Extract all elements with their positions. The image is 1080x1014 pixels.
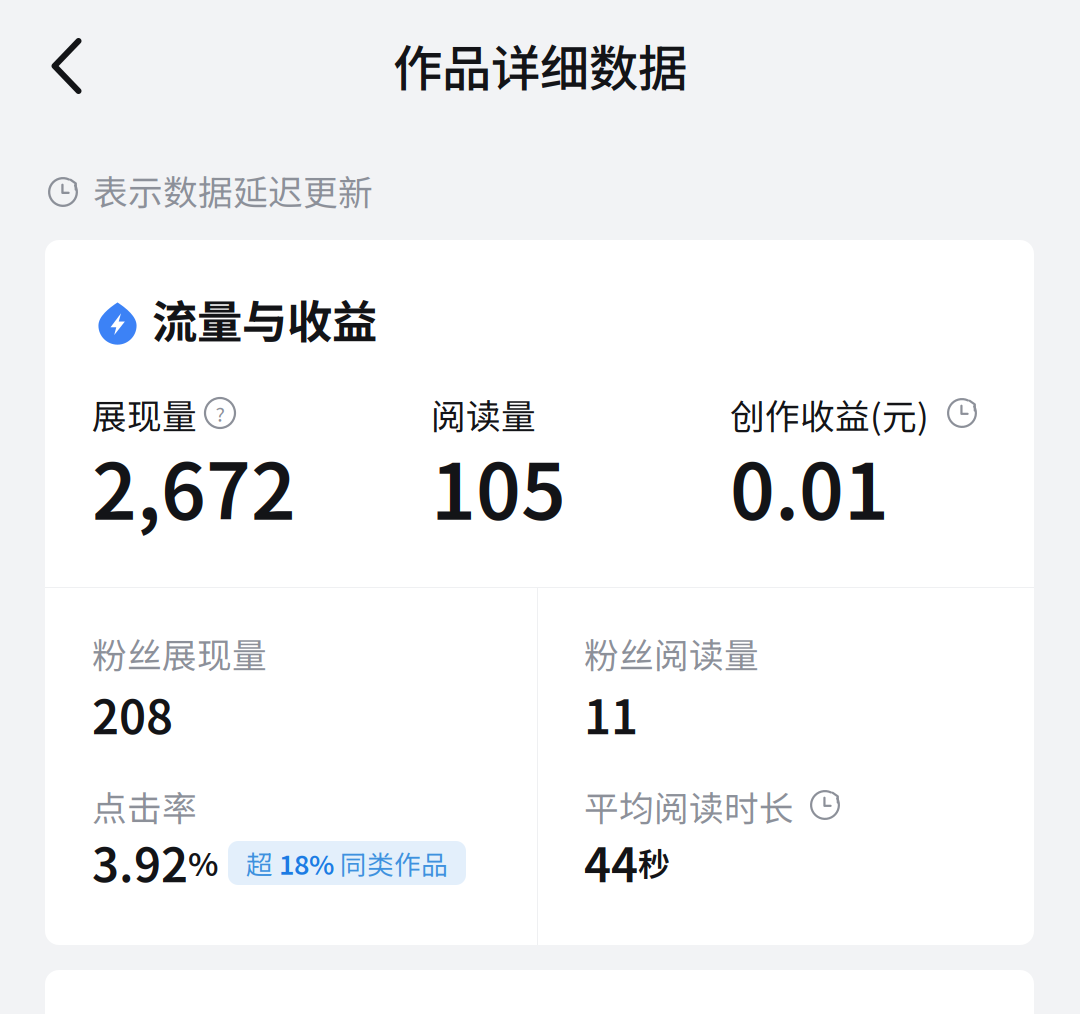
staticText: 粉丝阅读量 [584,628,759,678]
staticText: 超 [246,844,279,882]
staticText: 2,672 [92,430,296,542]
staticText: 创作收益(元) [730,389,929,439]
staticText: 18% [279,844,334,882]
staticText: 点击率 [92,781,197,831]
staticText: 105 [431,430,566,542]
staticText: ? [215,398,224,427]
button[interactable]: Back [14,14,119,118]
staticText: 平均阅读时长 [584,781,794,831]
staticText: 秒 [638,839,670,885]
staticText: 展现量 [92,389,197,439]
staticText: 11 [584,680,638,748]
staticText: 粉丝展现量 [92,628,267,678]
staticText: 3.92 [92,828,188,896]
staticText: 阅读量 [431,389,536,439]
staticText: % [188,839,218,885]
staticText: 表示数据延迟更新 [93,165,373,215]
staticText: 同类作品 [334,844,448,882]
staticText: 作品详细数据 [393,29,687,101]
staticText: 44 [584,828,638,896]
staticText: 0.01 [730,430,889,542]
staticText: 流量与收益 [152,286,377,352]
staticText: 208 [92,680,173,748]
